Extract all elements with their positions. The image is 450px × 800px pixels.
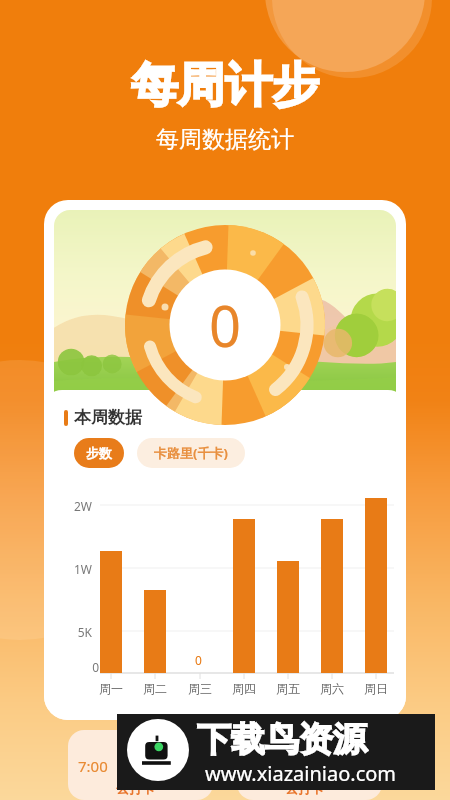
staticText: 0 — [92, 659, 99, 675]
staticText: 周四 — [232, 681, 256, 696]
staticText: 0 — [209, 287, 242, 363]
button[interactable]: 0 — [44, 200, 406, 720]
staticText: 周日 — [364, 681, 388, 696]
staticText: www.xiazainiao.com — [205, 760, 397, 787]
staticText: 本周数据 — [74, 407, 142, 428]
staticText: 0 — [195, 652, 202, 668]
staticText: 周六 — [320, 681, 344, 696]
staticText: 周二 — [143, 681, 167, 696]
button[interactable]: 7:00 — [68, 730, 213, 800]
staticText: 1W — [73, 561, 92, 577]
staticText: 周五 — [276, 681, 300, 696]
staticText: 周一 — [99, 681, 123, 696]
staticText: 去打卡 — [285, 780, 324, 796]
staticText: 7:00 — [78, 756, 108, 776]
button[interactable]: 卡路里(千卡) — [137, 438, 245, 468]
staticText: 每周计步 — [131, 56, 319, 115]
staticText: 步数 — [86, 445, 112, 461]
staticText: 去打卡 — [116, 780, 155, 796]
staticText: 2W — [73, 498, 92, 514]
staticText: 每周数据统计 — [156, 125, 294, 154]
staticText: 下载鸟资源 — [197, 718, 367, 761]
staticText: 5K — [77, 624, 92, 640]
staticText: 卡路里(千卡) — [154, 444, 228, 462]
button[interactable]: 步数 — [74, 438, 124, 468]
button[interactable]: 去打卡 — [237, 730, 382, 800]
staticText: 周三 — [188, 681, 212, 696]
